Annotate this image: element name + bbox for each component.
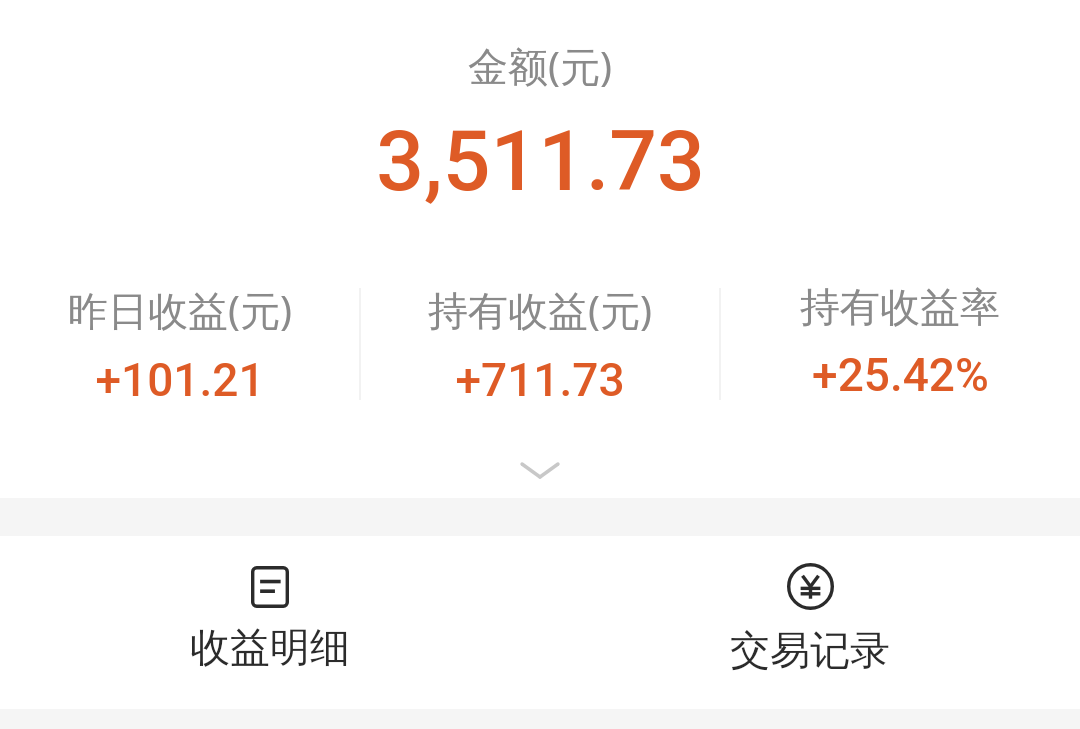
staticText: +101.21 [95,353,265,398]
staticText: +711.73 [455,353,625,398]
other: 收益明细 [251,566,289,608]
staticText: 金额(元) [468,38,612,93]
staticText: +25.42% [812,348,989,398]
button[interactable]: 交易记录 [540,534,1080,712]
button[interactable]: 持有收益(元) [360,282,720,398]
button[interactable]: 昨日收益(元) [0,282,360,398]
other: 交易记录 [787,563,834,610]
button[interactable]: 收益明细 [0,534,540,712]
staticText: 收益明细 [190,622,350,672]
staticText: 交易记录 [730,625,890,675]
other: 展开 [520,462,560,479]
button[interactable]: 持有收益率 [720,282,1080,398]
staticText: 3,511.73 [376,112,705,210]
staticText: 昨日收益(元) [68,282,292,337]
staticText: 持有收益(元) [428,282,652,337]
staticText: 持有收益率 [800,282,1000,332]
